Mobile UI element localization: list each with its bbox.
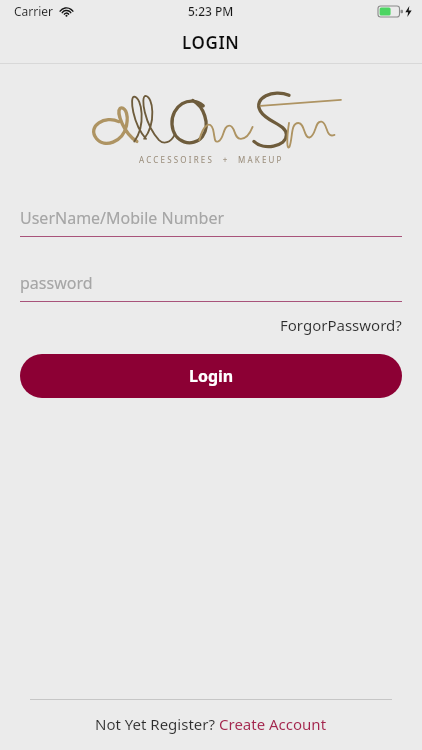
staticText: password — [20, 272, 93, 294]
button[interactable]: UserName/Mobile Number — [20, 205, 402, 237]
staticText: Login — [189, 365, 234, 387]
staticText: Carrier — [14, 3, 54, 19]
staticText: LOGIN — [182, 31, 240, 54]
staticText: 5:23 PM — [188, 3, 234, 19]
button[interactable]: ForgorPassword? — [280, 311, 402, 339]
staticText: ForgorPassword? — [280, 315, 402, 335]
staticText: Create Account — [219, 714, 327, 734]
staticText: UserName/Mobile Number — [20, 207, 225, 229]
button[interactable]: password — [20, 270, 402, 302]
staticText: ACCESSOIRES + MAKEUP — [139, 154, 284, 165]
button[interactable]: Not Yet Register? — [0, 714, 422, 734]
staticText: Not Yet Register? — [95, 714, 219, 734]
button[interactable]: Login — [20, 354, 402, 398]
